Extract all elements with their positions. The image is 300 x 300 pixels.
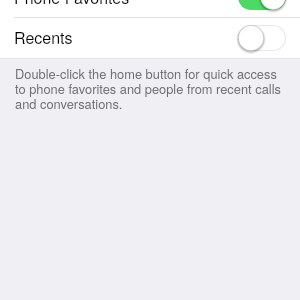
button[interactable]: Phone Favorites, on [238, 0, 286, 10]
staticText: Double-click the home button for quick a… [15, 67, 285, 112]
button[interactable]: Recents, off [238, 25, 286, 51]
button[interactable]: Recents [0, 17, 300, 58]
staticText: Phone Favorites [14, 0, 238, 9]
staticText: Recents [14, 26, 238, 49]
button[interactable]: Phone Favorites [0, 0, 300, 17]
